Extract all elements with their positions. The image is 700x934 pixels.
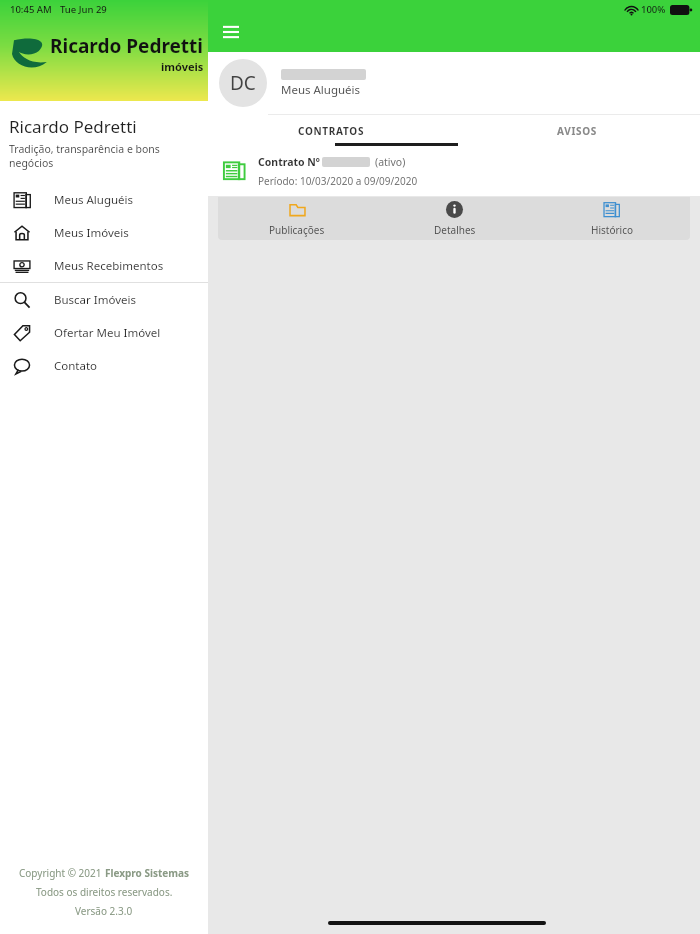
- staticText: Meus Aluguéis: [281, 82, 361, 98]
- staticText: Ofertar Meu Imóvel: [54, 325, 161, 341]
- staticText: Contato: [54, 358, 98, 374]
- staticText: DC: [230, 70, 256, 96]
- staticText: Publicações: [269, 223, 325, 237]
- button[interactable]: Meus Imóveis: [0, 216, 208, 249]
- staticText: Meus Aluguéis: [54, 192, 134, 208]
- staticText: Ricardo Pedretti: [9, 115, 137, 138]
- button[interactable]: Ofertar Meu Imóvel: [0, 316, 208, 349]
- button[interactable]: AVISOS: [454, 115, 700, 146]
- staticText: Contrato Nº: [258, 155, 320, 169]
- button[interactable]: Contato: [0, 349, 208, 382]
- staticText: Versão 2.3.0: [75, 904, 133, 918]
- staticText: imóveis: [161, 59, 204, 74]
- button[interactable]: Meus Recebimentos: [0, 249, 208, 282]
- button[interactable]: Buscar Imóveis: [0, 283, 208, 316]
- staticText: AVISOS: [557, 124, 598, 138]
- button[interactable]: Histórico: [533, 197, 690, 240]
- staticText: Meus Imóveis: [54, 225, 129, 241]
- staticText: Buscar Imóveis: [54, 292, 136, 308]
- button[interactable]: Meus Aluguéis: [0, 183, 208, 216]
- staticText: 10:45 AM: [10, 3, 52, 16]
- button[interactable]: CONTRATOS: [208, 115, 454, 146]
- staticText: 100%: [641, 3, 666, 16]
- staticText: Tradição, transparência e bons negócios: [9, 142, 199, 170]
- button[interactable]: Contrato Nº: [208, 146, 700, 196]
- button[interactable]: Menu: [217, 18, 245, 46]
- staticText: Copyright © 2021: [19, 866, 105, 880]
- staticText: Tue Jun 29: [60, 3, 107, 16]
- staticText: Histórico: [591, 223, 633, 237]
- staticText: CONTRATOS: [298, 124, 365, 138]
- button[interactable]: Detalhes: [376, 197, 533, 240]
- staticText: Todos os direitos reservados.: [36, 885, 173, 899]
- staticText: Ricardo Pedretti: [50, 33, 204, 59]
- staticText: Período: 10/03/2020 a 09/09/2020: [258, 174, 418, 188]
- staticText: Meus Recebimentos: [54, 258, 164, 274]
- button[interactable]: Publicações: [218, 197, 376, 240]
- staticText: Detalhes: [434, 223, 476, 237]
- staticText: (ativo): [375, 155, 406, 169]
- staticText: Flexpro Sistemas: [105, 866, 190, 880]
